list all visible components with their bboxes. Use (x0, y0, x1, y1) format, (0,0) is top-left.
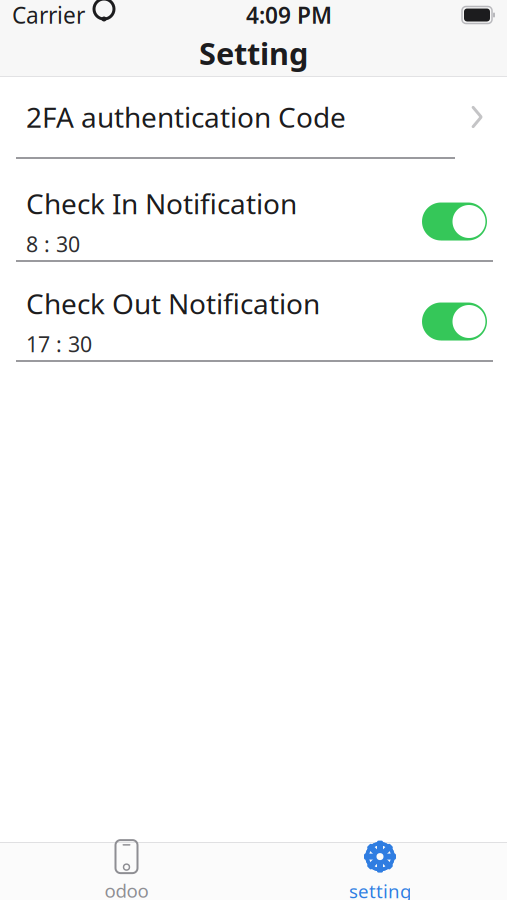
button[interactable]: setting (253, 843, 507, 900)
staticText: Carrier (12, 0, 85, 30)
button[interactable]: Check Out Notification (0, 283, 507, 360)
staticText: Check Out Notification (26, 285, 320, 322)
staticText: 17 : 30 (26, 330, 92, 358)
staticText: 2FA authentication Code (26, 98, 346, 136)
staticText: Check In Notification (26, 185, 297, 222)
staticText: 8 : 30 (26, 230, 80, 258)
staticText: Setting (199, 33, 308, 73)
staticText: 4:09 PM (246, 0, 332, 30)
button[interactable]: 2FA authentication Code (0, 77, 507, 157)
staticText: odoo (104, 878, 148, 900)
button[interactable]: Check In Notification (0, 183, 507, 260)
staticText: setting (349, 879, 411, 900)
button[interactable]: odoo (0, 843, 253, 900)
